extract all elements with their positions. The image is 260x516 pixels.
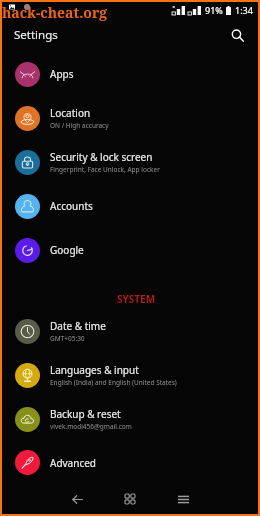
staticText: Security & lock screen [50, 150, 153, 164]
button[interactable]: Menu [169, 485, 197, 513]
staticText: Advanced [50, 456, 96, 470]
staticText: Settings [14, 27, 58, 43]
button[interactable]: Date & time [2, 309, 258, 353]
staticText: 1:34 [235, 4, 253, 16]
staticText: hack-cheat.org [2, 3, 108, 22]
staticText: Apps [50, 67, 74, 81]
button[interactable]: Advanced [2, 441, 258, 484]
staticText: SYSTEM [117, 292, 156, 306]
staticText: Accounts [50, 199, 93, 213]
button[interactable]: Apps [2, 52, 258, 96]
button[interactable]: Security & lock screen [2, 140, 258, 184]
staticText: Date & time [50, 319, 106, 333]
button[interactable]: Search [224, 22, 250, 48]
button[interactable]: Recents [116, 485, 144, 513]
staticText: vivek.modi456@gmail.com [50, 422, 132, 431]
staticText: Google [50, 243, 84, 257]
staticText: 91% [205, 4, 223, 16]
staticText: Fingerprint, Face Unlock, App locker [50, 165, 160, 174]
staticText: English (India) and English (United Stat… [50, 378, 177, 387]
staticText: GMT+05:30 [50, 334, 85, 343]
staticText: Languages & input [50, 363, 139, 377]
button[interactable]: Back [63, 485, 91, 513]
staticText: Backup & reset [50, 407, 121, 421]
button[interactable]: Location [2, 96, 258, 140]
button[interactable]: Languages & input [2, 353, 258, 397]
button[interactable]: Accounts [2, 184, 258, 228]
staticText: ON / High accuracy [50, 121, 109, 130]
button[interactable]: Google [2, 228, 258, 272]
staticText: Location [50, 106, 91, 120]
button[interactable]: Backup & reset [2, 397, 258, 441]
